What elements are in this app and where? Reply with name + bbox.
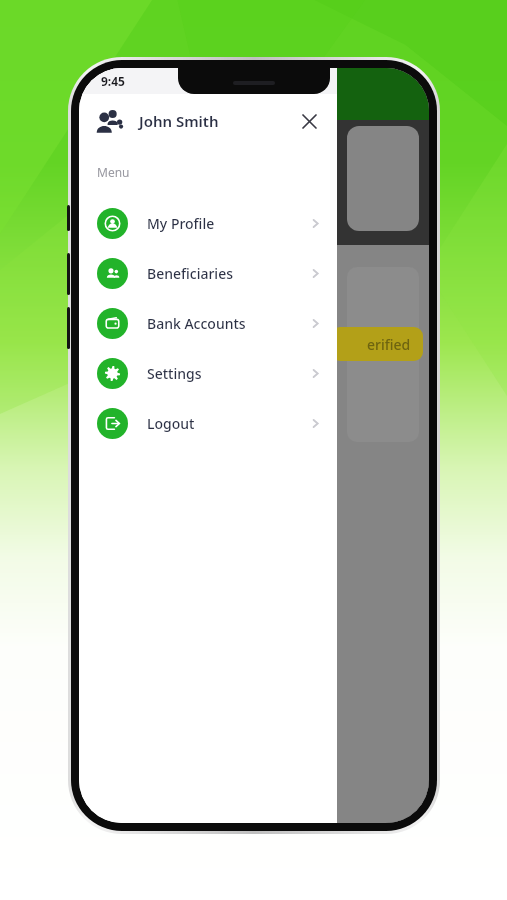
staticText: John Smith xyxy=(139,111,219,131)
button[interactable]: Beneficiaries xyxy=(79,248,337,298)
staticText: Beneficiaries xyxy=(147,264,233,283)
staticText: Settings xyxy=(147,364,202,383)
staticText: 9:45 xyxy=(101,73,125,89)
staticText: Logout xyxy=(147,414,195,433)
button[interactable]: Logout xyxy=(79,398,337,448)
button[interactable]: Bank Accounts xyxy=(79,298,337,348)
button[interactable]: My Profile xyxy=(79,198,337,248)
staticText: My Profile xyxy=(147,214,215,233)
staticText: Bank Accounts xyxy=(147,314,246,333)
button[interactable]: Settings xyxy=(79,348,337,398)
button[interactable]: Close menu xyxy=(295,107,323,135)
staticText: Menu xyxy=(97,164,130,180)
staticText: erified xyxy=(367,335,411,354)
